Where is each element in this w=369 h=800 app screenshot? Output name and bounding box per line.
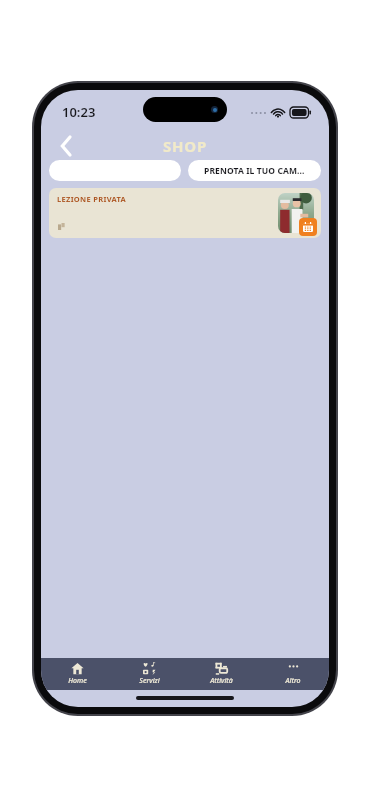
button[interactable]: LEZIONE PRIVATA xyxy=(49,188,321,238)
staticText: Home xyxy=(68,676,87,686)
button[interactable]: Search xyxy=(49,160,181,181)
staticText: SHOP xyxy=(163,136,208,156)
button[interactable]: Back xyxy=(49,132,83,160)
button[interactable]: PRENOTA IL TUO CAM... xyxy=(188,160,321,181)
button[interactable]: Attività xyxy=(185,658,257,690)
staticText: 10:23 xyxy=(62,103,96,121)
button[interactable]: Book calendar xyxy=(299,218,317,236)
staticText: Servizi xyxy=(139,676,160,686)
staticText: Attività xyxy=(210,676,233,686)
button[interactable]: Home xyxy=(41,658,113,690)
staticText: Altro xyxy=(285,676,301,686)
button[interactable]: Servizi xyxy=(113,658,185,690)
staticText: PRENOTA IL TUO CAM... xyxy=(204,165,305,177)
staticText: LEZIONE PRIVATA xyxy=(57,194,127,204)
button[interactable]: Altro xyxy=(257,658,329,690)
